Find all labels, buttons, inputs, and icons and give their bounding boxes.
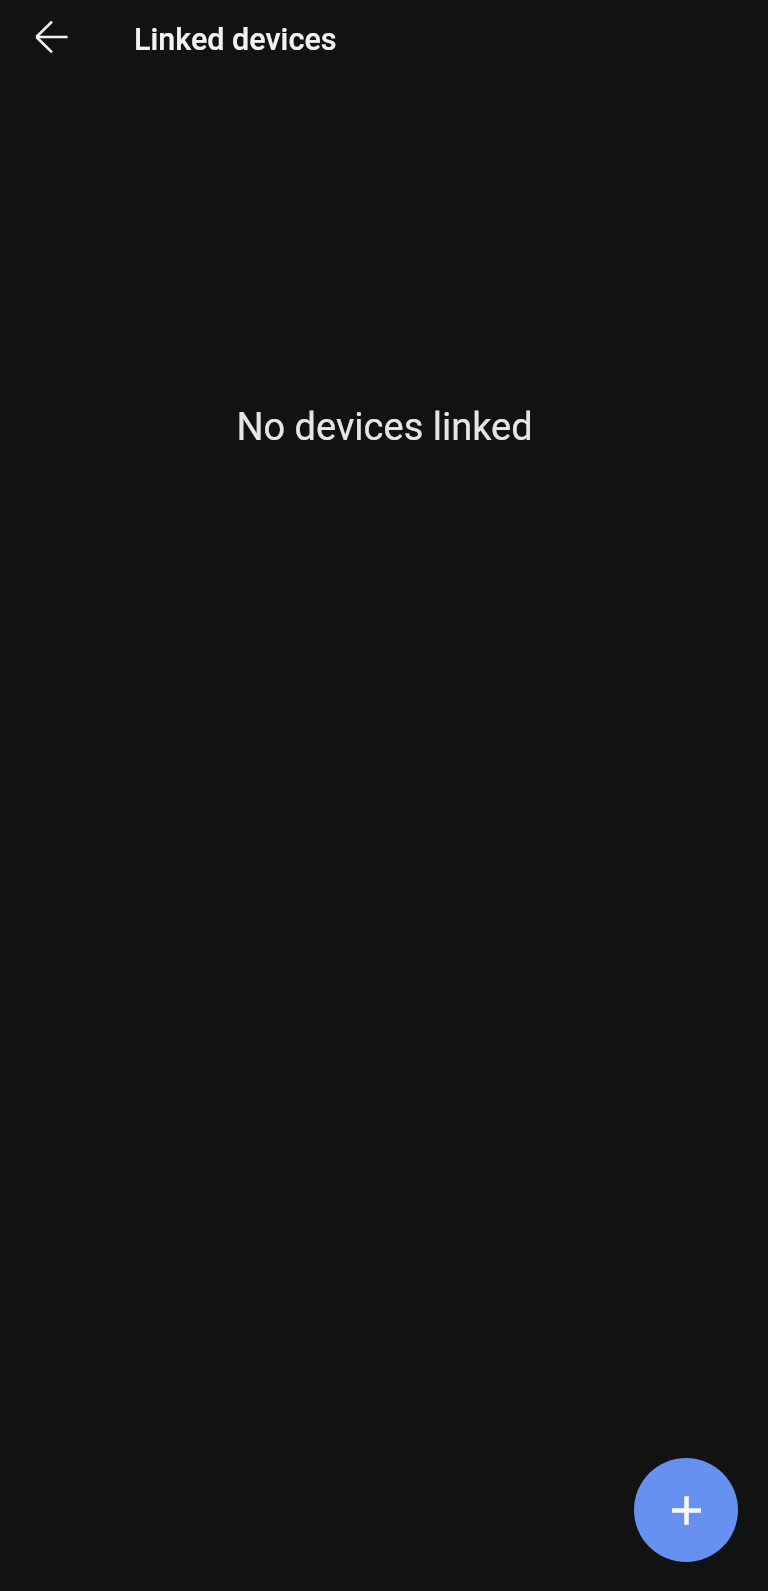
button[interactable]: Navigate up [16,1,88,73]
staticText: Linked devices [134,22,337,58]
button[interactable]: Link a device [596,1428,759,1591]
staticText: No devices linked [236,405,533,450]
